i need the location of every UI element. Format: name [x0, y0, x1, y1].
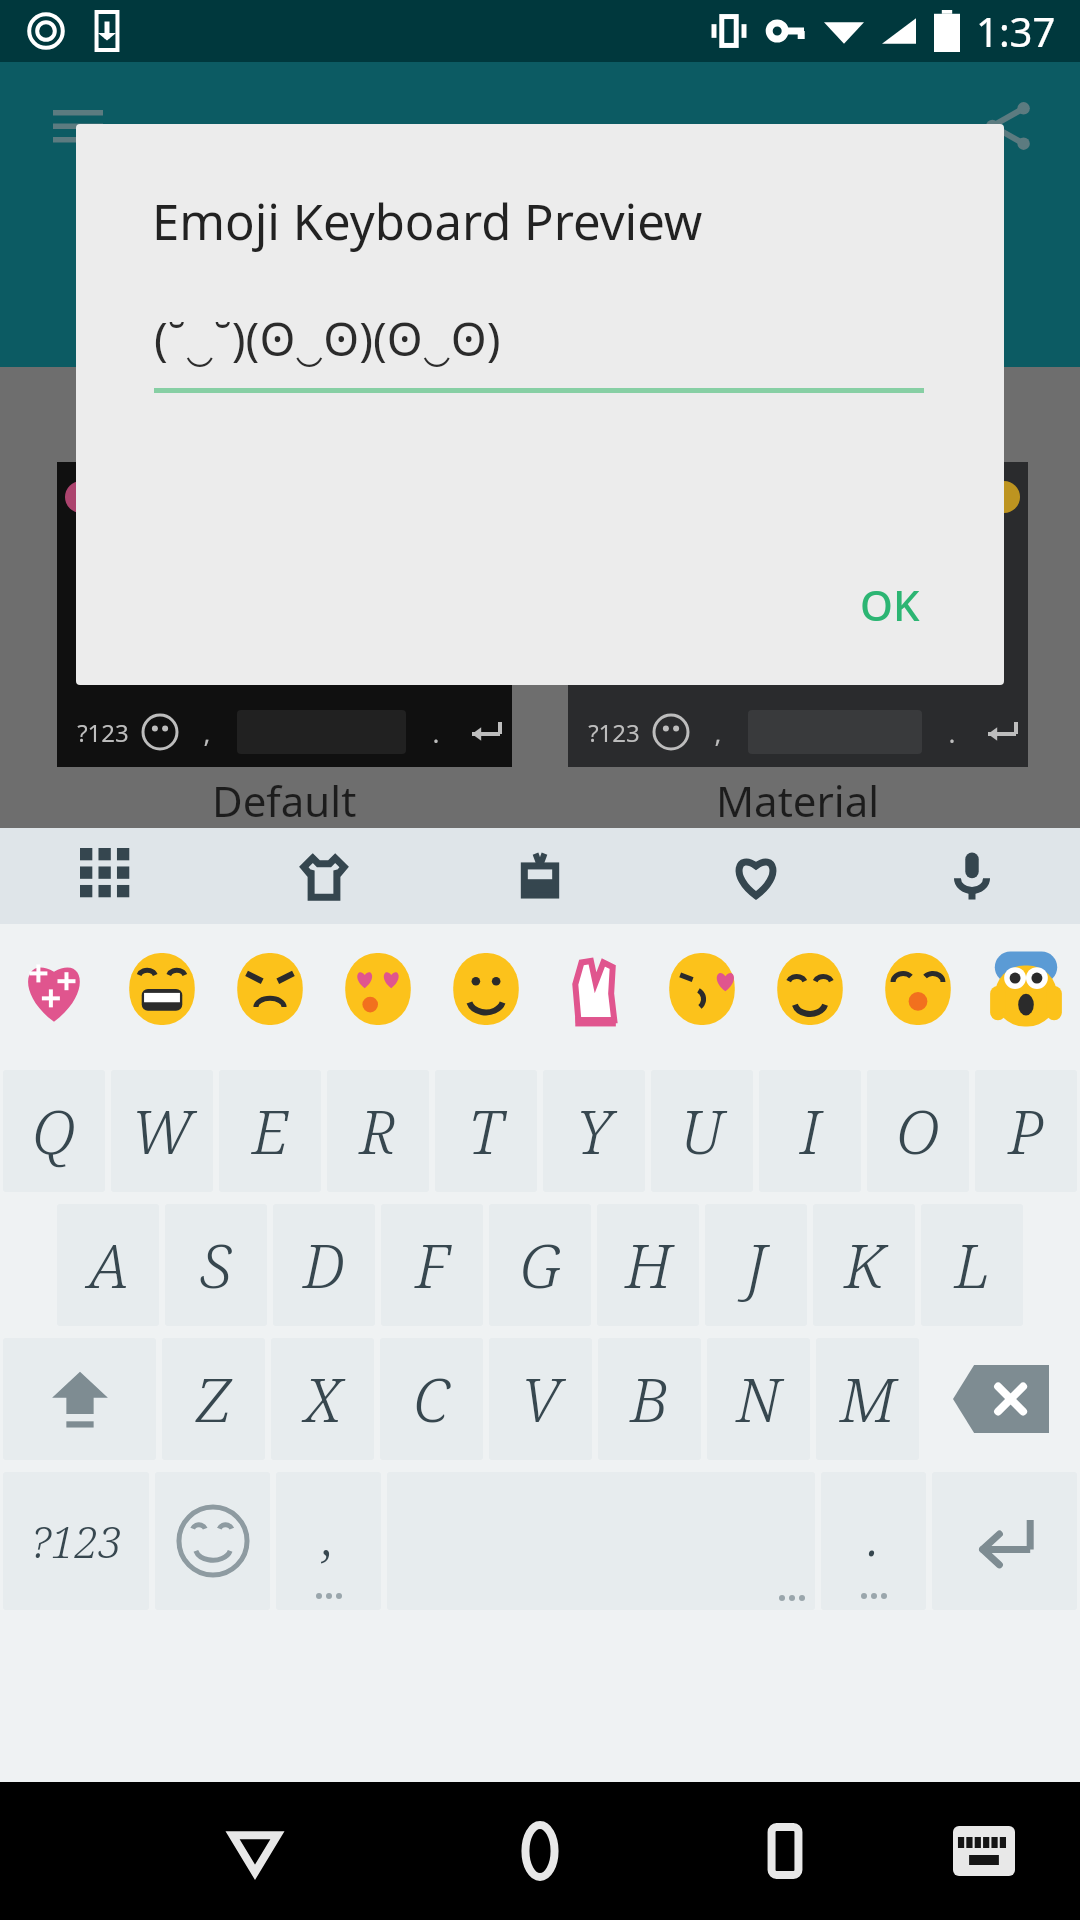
button[interactable]: Emoji 8: [756, 924, 864, 1054]
button[interactable]: Enter: [932, 1472, 1077, 1610]
staticText: .: [922, 715, 982, 750]
button[interactable]: Menu: [36, 84, 120, 168]
staticText: L: [954, 1224, 991, 1306]
button[interactable]: T: [435, 1070, 537, 1192]
button[interactable]: Change keyboard: [936, 1803, 1032, 1899]
button[interactable]: R: [327, 1070, 429, 1192]
staticText: A: [88, 1224, 129, 1306]
staticText: N: [736, 1358, 781, 1440]
staticText: ,: [688, 715, 748, 750]
button[interactable]: Gifts: [432, 828, 648, 924]
button[interactable]: K: [813, 1204, 915, 1326]
button[interactable]: J: [705, 1204, 807, 1326]
button[interactable]: ,: [276, 1472, 381, 1610]
staticText: Q: [32, 1090, 76, 1172]
button[interactable]: Share: [966, 84, 1050, 168]
staticText: S: [200, 1224, 232, 1306]
staticText: ,: [323, 1498, 335, 1572]
button[interactable]: Clothing: [216, 828, 432, 924]
button[interactable]: P: [975, 1070, 1077, 1192]
button[interactable]: Emoji 7: [648, 924, 756, 1054]
staticText: .: [406, 715, 466, 750]
staticText: Material: [716, 772, 880, 829]
button[interactable]: C: [380, 1338, 483, 1460]
staticText: K: [844, 1224, 885, 1306]
button[interactable]: Categories: [0, 828, 216, 924]
button[interactable]: V: [489, 1338, 592, 1460]
staticText: ?123: [574, 716, 654, 749]
staticText: V: [521, 1358, 561, 1440]
staticText: .: [868, 1498, 880, 1572]
staticText: Emoji Keyboard Preview: [152, 188, 703, 255]
button[interactable]: S: [165, 1204, 267, 1326]
button[interactable]: Emoji 1: [0, 924, 108, 1054]
staticText: OK: [860, 576, 920, 633]
button[interactable]: Emoji 5: [432, 924, 540, 1054]
button[interactable]: OK: [838, 562, 942, 647]
staticText: P: [1008, 1090, 1044, 1172]
button[interactable]: ?123: [568, 462, 1028, 767]
button[interactable]: Z: [162, 1338, 265, 1460]
staticText: ?123: [63, 716, 143, 749]
button[interactable]: Backspace: [925, 1338, 1077, 1460]
staticText: R: [359, 1090, 398, 1172]
staticText: O: [896, 1090, 940, 1172]
button[interactable]: Recent apps: [730, 1796, 840, 1906]
button[interactable]: Home: [485, 1796, 595, 1906]
button[interactable]: ?123: [57, 462, 512, 767]
staticText: E: [252, 1090, 289, 1172]
staticText: I: [800, 1090, 821, 1172]
button[interactable]: X: [271, 1338, 374, 1460]
button[interactable]: Back: [200, 1796, 310, 1906]
staticText: Z: [196, 1358, 231, 1440]
button[interactable]: Voice input: [864, 828, 1080, 924]
button[interactable]: E: [219, 1070, 321, 1192]
button[interactable]: N: [707, 1338, 810, 1460]
staticText: (˘‿˘)(ʘ‿ʘ)(ʘ‿ʘ): [154, 307, 501, 370]
staticText: Default: [212, 772, 357, 829]
button[interactable]: Emoji 2: [108, 924, 216, 1054]
staticText: 1:37: [976, 4, 1056, 58]
button[interactable]: Y: [543, 1070, 645, 1192]
button[interactable]: W: [111, 1070, 213, 1192]
staticText: Y: [576, 1090, 612, 1172]
button[interactable]: Emoji 6: [540, 924, 648, 1054]
staticText: F: [415, 1224, 450, 1306]
staticText: M: [840, 1358, 896, 1440]
button[interactable]: G: [489, 1204, 591, 1326]
button[interactable]: H: [597, 1204, 699, 1326]
staticText: X: [304, 1358, 342, 1440]
staticText: H: [625, 1224, 672, 1306]
staticText: ?123: [30, 1511, 122, 1571]
button[interactable]: Emoji 3: [216, 924, 324, 1054]
button[interactable]: A: [57, 1204, 159, 1326]
button[interactable]: B: [598, 1338, 701, 1460]
button[interactable]: Shift: [3, 1338, 156, 1460]
button[interactable]: Emoji 9: [864, 924, 972, 1054]
button[interactable]: Emoji 4: [324, 924, 432, 1054]
staticText: D: [303, 1224, 345, 1306]
staticText: J: [746, 1224, 767, 1306]
button[interactable]: F: [381, 1204, 483, 1326]
staticText: ,: [177, 715, 237, 750]
staticText: C: [413, 1358, 450, 1440]
button[interactable]: Emoji: [155, 1472, 270, 1610]
staticText: G: [520, 1224, 561, 1306]
button[interactable]: M: [816, 1338, 919, 1460]
button[interactable]: ?123: [3, 1472, 149, 1610]
staticText: B: [630, 1358, 669, 1440]
button[interactable]: D: [273, 1204, 375, 1326]
staticText: T: [468, 1090, 504, 1172]
staticText: U: [680, 1090, 724, 1172]
button[interactable]: Favorites: [648, 828, 864, 924]
staticText: W: [131, 1090, 193, 1172]
button[interactable]: Q: [3, 1070, 105, 1192]
button[interactable]: .: [821, 1472, 926, 1610]
button[interactable]: Emoji 10: [972, 924, 1080, 1054]
button[interactable]: L: [921, 1204, 1023, 1326]
button[interactable]: U: [651, 1070, 753, 1192]
button[interactable]: O: [867, 1070, 969, 1192]
button[interactable]: I: [759, 1070, 861, 1192]
